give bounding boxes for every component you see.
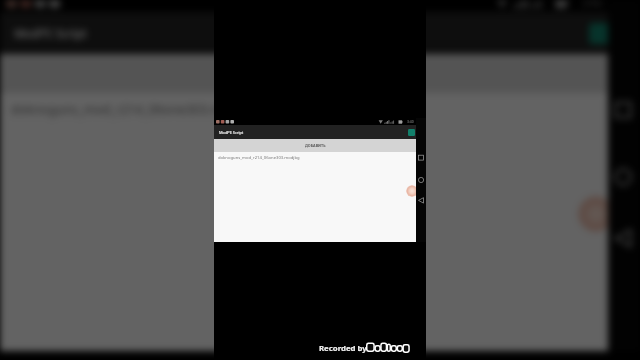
staticText: 3:40 [407, 119, 414, 124]
button[interactable]: ДОБАВИТЬ [214, 139, 416, 152]
staticText: ModPE Script [14, 25, 87, 41]
staticText: doknoguns_mod_r214_06one303.modjbg [218, 155, 300, 161]
staticText: ДОБАВИТЬ [305, 143, 326, 148]
staticText: doknoguns_mod_r214_06one303.modjbg [11, 101, 257, 118]
button[interactable]: doknoguns_mod_r214_06one303.modjbg [0, 93, 608, 126]
button[interactable]: Add script [406, 185, 418, 197]
button[interactable]: ДОБАВИТЬ [0, 54, 608, 93]
button[interactable]: doknoguns_mod_r214_06one303.modjbg [214, 152, 416, 163]
button[interactable]: Overflow menu [408, 129, 415, 136]
button[interactable]: Overflow menu [589, 23, 610, 44]
button[interactable]: Add script [578, 196, 614, 232]
staticText: Recorded by [319, 343, 367, 354]
staticText: ModPE Script [219, 130, 244, 135]
